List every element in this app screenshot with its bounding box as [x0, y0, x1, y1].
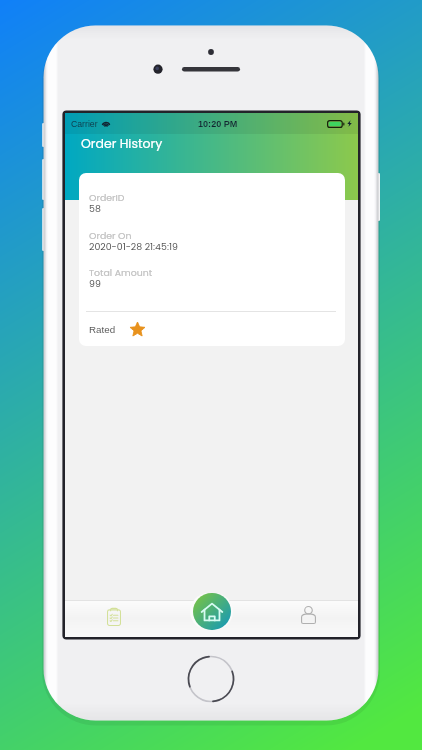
staticText: OrderID [89, 191, 125, 204]
staticText: Order History [81, 135, 163, 152]
staticText: 99 [89, 277, 101, 290]
staticText: 10:20 PM [198, 119, 238, 129]
staticText: Rated [89, 324, 116, 335]
staticText: 58 [89, 202, 101, 215]
staticText: Carrier [71, 119, 98, 129]
button[interactable]: OrderID [79, 173, 345, 346]
button[interactable]: Orders [65, 600, 162, 637]
staticText: Total Amount [89, 266, 153, 279]
button[interactable]: Home [190, 593, 233, 630]
staticText: 2020-01-28 21:45:19 [89, 240, 178, 253]
button[interactable]: Profile [260, 600, 358, 637]
staticText: Order On [89, 229, 132, 242]
